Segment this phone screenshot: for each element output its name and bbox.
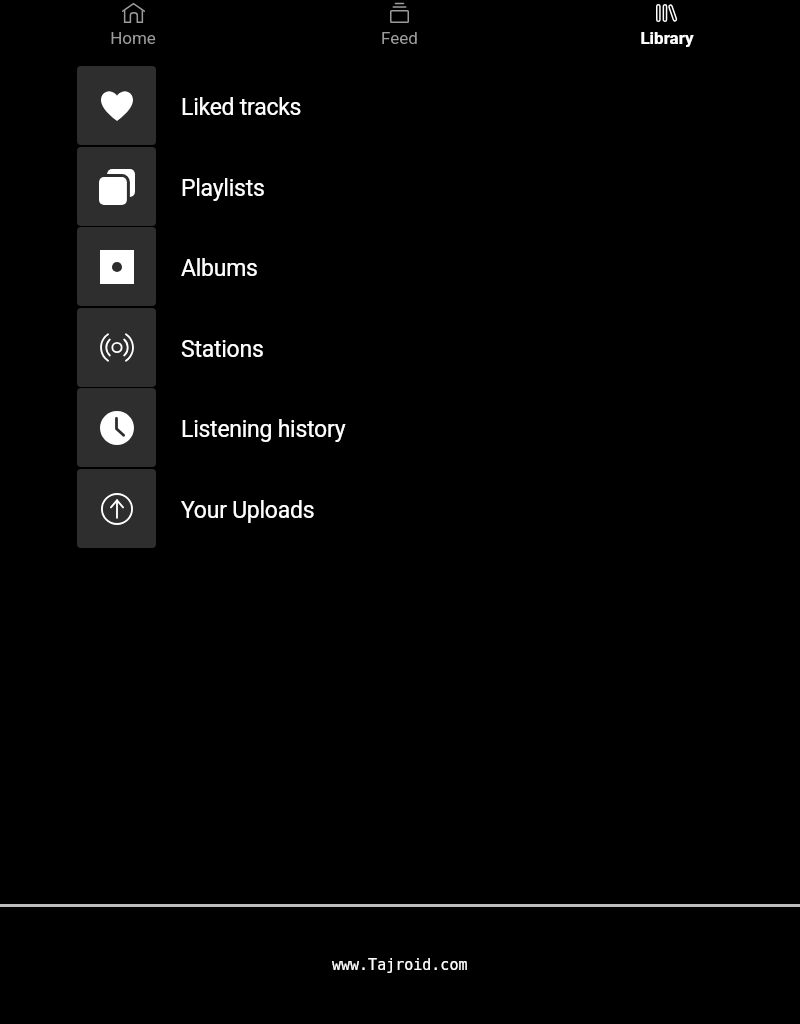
staticText: Playlists xyxy=(181,175,265,202)
staticText: Liked tracks xyxy=(181,94,302,121)
staticText: Home xyxy=(110,28,156,48)
button[interactable]: Feed xyxy=(266,0,533,48)
button[interactable]: Stations xyxy=(0,308,800,387)
button[interactable]: Listening history xyxy=(0,388,800,467)
staticText: Feed xyxy=(381,28,418,48)
button[interactable]: Playlists xyxy=(0,147,800,226)
staticText: Listening history xyxy=(181,416,346,443)
button[interactable]: Home xyxy=(0,0,266,48)
button[interactable]: Your Uploads xyxy=(0,469,800,548)
staticText: Your Uploads xyxy=(181,497,315,524)
button[interactable]: Library xyxy=(533,0,800,48)
staticText: Library xyxy=(640,28,694,48)
staticText: Stations xyxy=(181,336,264,363)
staticText: www.Tajroid.com xyxy=(332,956,468,973)
button[interactable]: Liked tracks xyxy=(0,66,800,145)
staticText: Albums xyxy=(181,255,258,282)
button[interactable]: Albums xyxy=(0,227,800,306)
